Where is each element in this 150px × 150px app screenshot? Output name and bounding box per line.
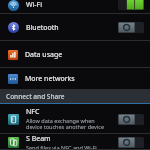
staticText: Wi-Fi [26, 0, 118, 10]
staticText: Allow data exchange when device touches … [26, 117, 105, 131]
button[interactable]: Toggle off [118, 114, 144, 125]
button[interactable]: Bluetooth [0, 14, 150, 41]
button[interactable]: Toggle off [118, 22, 144, 33]
staticText: Send files via NFC and Wi-Fi [26, 144, 97, 150]
button[interactable]: More networks [0, 68, 150, 90]
button[interactable]: S Beam [0, 134, 150, 150]
staticText: Data usage [25, 50, 63, 60]
button[interactable]: Data usage [0, 41, 150, 68]
button[interactable]: Wi-Fi [0, 0, 150, 14]
staticText: Connect and Share [6, 92, 65, 101]
button[interactable]: Toggle on [118, 0, 144, 10]
staticText: S Beam [26, 134, 51, 144]
button[interactable]: Toggle off [118, 137, 144, 148]
staticText: Bluetooth [26, 23, 59, 33]
staticText: NFC [26, 107, 40, 117]
button[interactable]: NFC [0, 104, 150, 134]
staticText: More networks [25, 74, 75, 84]
